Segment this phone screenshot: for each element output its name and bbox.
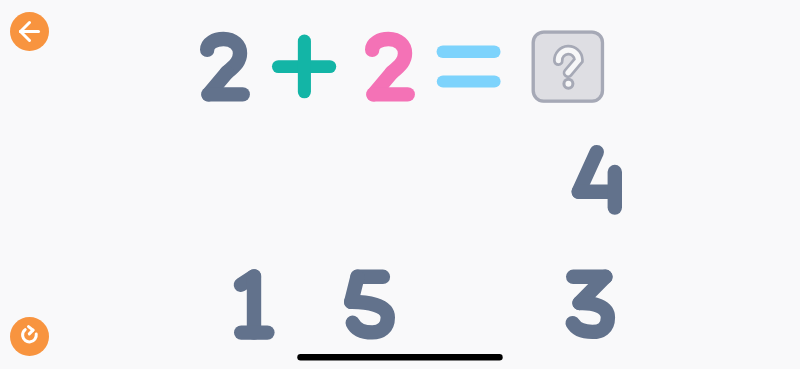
button[interactable]: Answer slot (532, 30, 604, 102)
button[interactable]: Back (10, 12, 49, 51)
button[interactable]: Restart (10, 317, 49, 356)
